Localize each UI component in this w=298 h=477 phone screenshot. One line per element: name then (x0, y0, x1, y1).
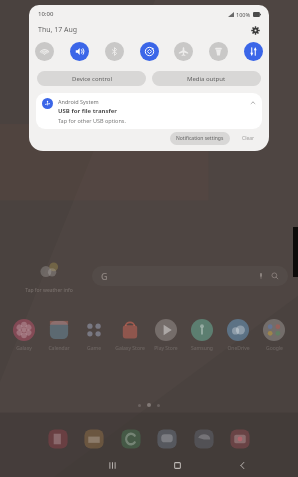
button[interactable]: Dock app 4 (155, 427, 179, 451)
button[interactable]: Game Launcher (76, 318, 112, 352)
button[interactable]: G (92, 266, 288, 286)
button[interactable]: Airplane mode (174, 42, 193, 61)
button[interactable]: Galaxy Store (112, 318, 148, 352)
staticText: Galaxy (16, 345, 32, 352)
button[interactable]: Recents (80, 453, 145, 477)
staticText: USB for file transfer (58, 107, 118, 115)
button[interactable]: Sound (70, 42, 89, 61)
button[interactable]: Clear (236, 132, 261, 145)
button[interactable]: Bluetooth (105, 42, 124, 61)
staticText: Android System (58, 98, 99, 105)
button[interactable]: Dock app 3 (119, 427, 143, 451)
button[interactable]: Dock app 2 (82, 427, 106, 451)
button[interactable]: Galaxy (6, 318, 41, 352)
button[interactable]: Back (210, 453, 275, 477)
staticText: Google (266, 345, 283, 352)
button[interactable]: Dock app 5 (192, 427, 216, 451)
button[interactable]: Play Store (148, 318, 184, 352)
staticText: 10:00 (38, 10, 54, 18)
button[interactable]: Flashlight (209, 42, 228, 61)
staticText: 100% (236, 11, 251, 18)
button[interactable]: Android System (36, 93, 262, 129)
staticText: Calendar (48, 345, 70, 352)
button[interactable]: Auto rotate (140, 42, 159, 61)
button[interactable]: Notification settings (170, 132, 230, 145)
button[interactable]: Google (256, 318, 292, 352)
staticText: Thu, 17 Aug (38, 25, 78, 35)
button[interactable]: Mobile data (244, 42, 263, 61)
staticText: Galaxy Store (115, 345, 145, 352)
staticText: Play Store (154, 345, 178, 352)
button[interactable]: Weather widget (10, 258, 88, 294)
staticText: Tap for weather info (25, 287, 73, 294)
staticText: Media output (187, 75, 226, 83)
staticText: OneDrive (227, 345, 250, 352)
button[interactable]: OneDrive (220, 318, 256, 352)
staticText: Samsung Health (184, 345, 220, 352)
button[interactable]: Settings (249, 24, 261, 36)
staticText: Notification settings (176, 135, 224, 142)
button[interactable]: Device control (37, 71, 146, 86)
button[interactable]: Media output (152, 71, 261, 86)
staticText: Clear (242, 135, 255, 142)
button[interactable]: Dock app 6 (228, 427, 252, 451)
staticText: Device control (72, 75, 112, 83)
button[interactable]: Wi-Fi (35, 42, 54, 61)
staticText: G (101, 270, 108, 282)
button[interactable]: Expand notification (248, 98, 257, 107)
staticText: Tap for other USB options. (58, 117, 126, 124)
button[interactable]: Home (145, 453, 210, 477)
staticText: Game Launcher (76, 345, 112, 352)
button[interactable]: Dock app 1 (46, 427, 70, 451)
button[interactable]: Samsung Health (184, 318, 220, 352)
button[interactable]: Calendar (41, 318, 76, 352)
